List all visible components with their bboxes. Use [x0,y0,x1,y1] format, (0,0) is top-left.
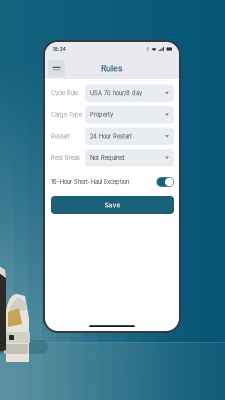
staticText: 24 Hour Restart [90,133,132,140]
staticText: Property [90,111,113,118]
button[interactable]: Save [51,196,174,214]
staticText: Save [104,201,120,209]
button[interactable]: USA 70 hour/8 day [85,84,174,102]
staticText: 18:24 [52,46,65,52]
button[interactable]: Menu [48,60,65,77]
button[interactable]: 24 Hour Restart [85,128,174,145]
staticText: Not Required [90,154,125,161]
staticText: USA 70 hour/8 day [90,90,142,96]
staticText: Cargo Type [51,111,82,118]
staticText: Rules [101,63,123,73]
staticText: Cycle Rule [51,90,78,96]
button[interactable]: Property [85,106,174,123]
staticText: Restart [51,133,70,140]
staticText: 16-Hour Short-Haul Exception [51,178,129,185]
button[interactable]: Not Required [85,149,174,167]
staticText: Rest Break [51,154,80,161]
button[interactable]: 16-Hour Short-Haul Exception [157,177,174,187]
